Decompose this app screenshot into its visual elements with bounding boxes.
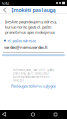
button[interactable]: Paslaugos teikimo sąlygos bbox=[11, 83, 56, 89]
button[interactable]: Recent apps bbox=[44, 110, 67, 119]
staticText: vardas@namo-vardas.lt bbox=[4, 45, 48, 50]
staticText: Įmokėti paslaugą bbox=[11, 6, 55, 14]
staticText: Informuojame, kad už el. pašto pranešimų… bbox=[12, 68, 54, 82]
staticText: Įveskite pageidaujamą adresą, kuriuo nor… bbox=[5, 19, 57, 35]
button[interactable]: Back bbox=[0, 110, 22, 119]
button[interactable]: Home bbox=[22, 110, 44, 119]
button[interactable]: Back bbox=[0, 6, 10, 14]
staticText: 6:42 bbox=[2, 0, 9, 6]
staticText: el. pašto adresas bbox=[7, 38, 36, 43]
staticText: Paslaugos teikimo sąlygos bbox=[11, 83, 56, 89]
